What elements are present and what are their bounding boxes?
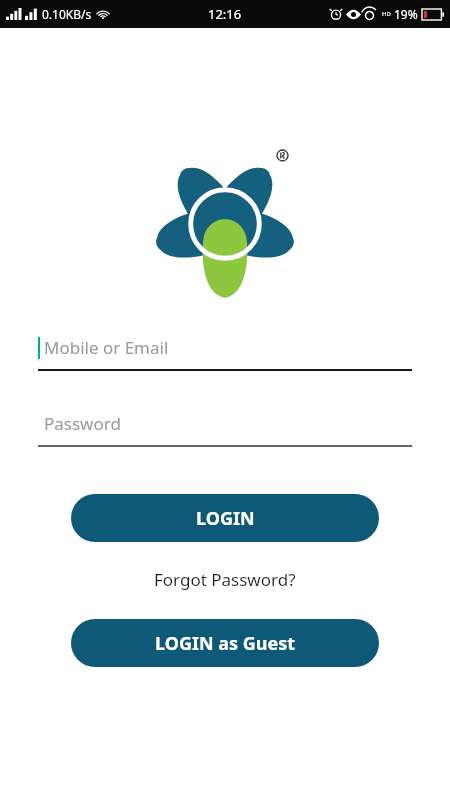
staticText: Mobile or Email bbox=[44, 336, 169, 359]
staticText: 19% bbox=[394, 6, 418, 22]
staticText: 0.10KB/s bbox=[42, 6, 92, 22]
staticText: LOGIN bbox=[196, 506, 255, 531]
button[interactable]: LOGIN bbox=[71, 494, 379, 542]
staticText: HD bbox=[382, 10, 391, 18]
button[interactable]: Password bbox=[38, 399, 412, 447]
button[interactable]: Mobile or Email bbox=[38, 323, 412, 371]
staticText: LOGIN as Guest bbox=[155, 631, 296, 656]
button[interactable]: Forgot Password? bbox=[142, 562, 308, 597]
staticText: 12:16 bbox=[208, 5, 242, 23]
staticText: Password bbox=[44, 412, 121, 435]
button[interactable]: LOGIN as Guest bbox=[71, 619, 379, 667]
